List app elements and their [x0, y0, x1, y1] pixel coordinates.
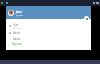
button[interactable]: Sign out: [6, 41, 91, 46]
button[interactable]: Add: [84, 16, 89, 21]
staticText: Alerts: [13, 31, 21, 35]
staticText: Jane: [16, 10, 22, 14]
staticText: Sync: [13, 23, 19, 27]
staticText: About: [13, 37, 21, 41]
staticText: j@mail: [16, 14, 23, 17]
staticText: Sign out: [12, 42, 23, 46]
staticText: Last 2m: [13, 27, 22, 30]
button[interactable]: Sync: [6, 22, 91, 30]
button[interactable]: Alerts: [6, 30, 91, 36]
button[interactable]: About: [6, 36, 91, 41]
